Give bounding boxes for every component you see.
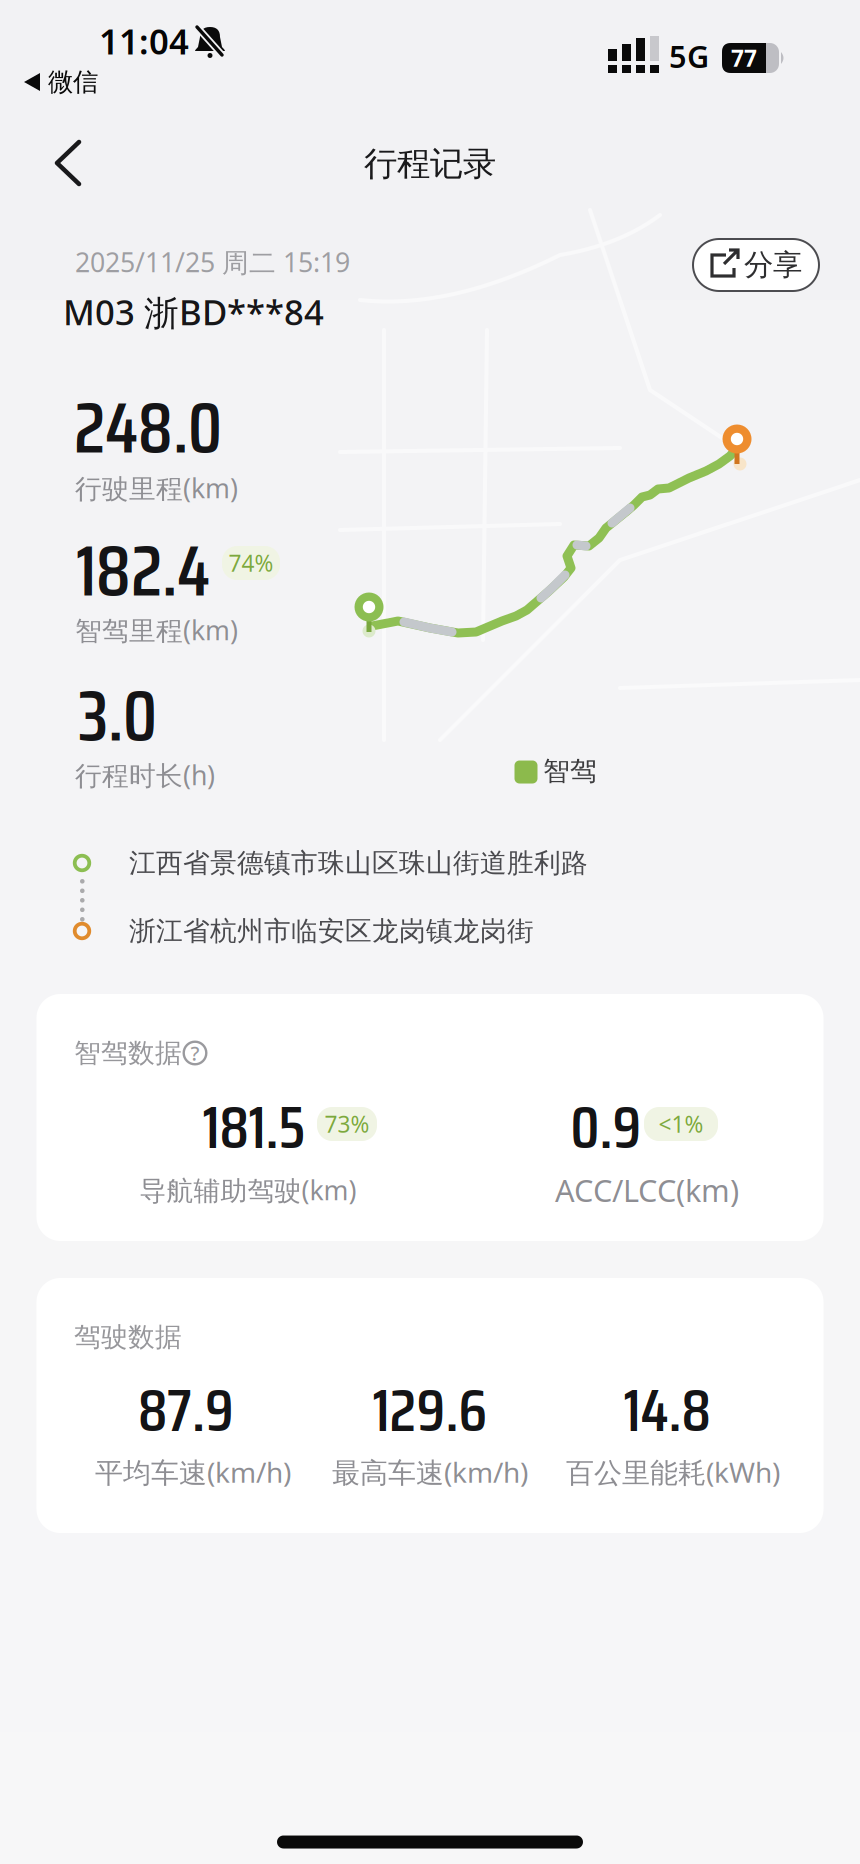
staticText: 0.9 [570,1080,641,1174]
staticText: 74% [228,548,273,578]
staticText: 行驶里程(km) [75,470,238,506]
staticText: 百公里能耗(kWh) [566,1453,780,1491]
staticText: ? [190,1040,199,1066]
staticText: 导航辅助驾驶(km) [139,1172,356,1208]
staticText: 智驾 [543,755,597,787]
button[interactable]: 智驾数据说明 [182,1040,208,1066]
staticText: 5G [669,36,709,76]
staticText: 87.9 [138,1363,234,1457]
staticText: 江西省景德镇市珠山区珠山街道胜利路 [129,847,588,879]
staticText: 最高车速(km/h) [332,1453,528,1491]
staticText: 智驾数据 [74,1037,182,1069]
staticText: 248.0 [74,372,222,484]
staticText: 77 [731,43,757,73]
staticText: 浙江省杭州市临安区龙岗镇龙岗街 [129,915,534,947]
button[interactable]: 返回 [47,132,89,194]
staticText: <1% [658,1109,703,1139]
staticText: 3.0 [78,660,157,772]
staticText: 14.8 [623,1363,710,1457]
staticText: 智驾里程(km) [75,612,238,648]
staticText: 181.5 [202,1080,305,1174]
staticText: 驾驶数据 [74,1321,182,1353]
staticText: 2025/11/25 周二 15:19 [75,244,350,280]
staticText: 129.6 [372,1363,487,1457]
staticText: 11:04 [99,18,189,64]
staticText: 73% [324,1109,369,1139]
button[interactable]: 返回微信 [24,66,98,97]
staticText: ACC/LCC(km) [555,1170,739,1210]
staticText: 分享 [744,247,802,283]
button[interactable]: 分享 [692,238,820,292]
staticText: 182.4 [76,515,210,627]
staticText: M03 浙BD***84 [63,289,324,335]
staticText: 微信 [48,66,98,97]
staticText: 行程记录 [364,143,496,184]
staticText: 平均车速(km/h) [95,1453,291,1491]
staticText: 行程时长(h) [75,757,215,793]
